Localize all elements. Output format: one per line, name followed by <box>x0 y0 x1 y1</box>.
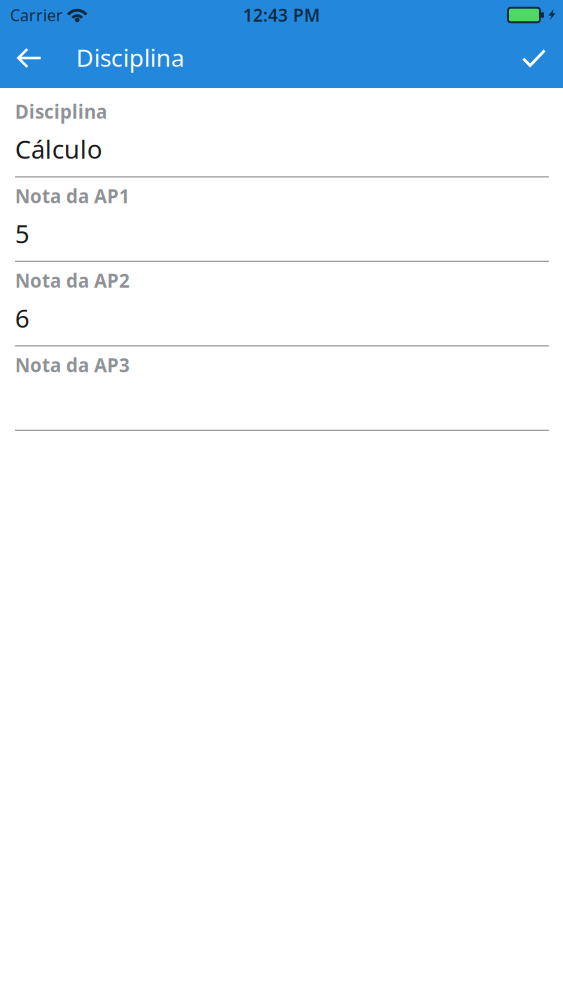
button[interactable]: Nota da AP1 <box>15 177 549 262</box>
button[interactable]: Nota da AP2 <box>15 262 549 346</box>
button[interactable]: Back <box>0 30 59 90</box>
button[interactable]: Save <box>505 30 563 90</box>
staticText: Nota da AP2 <box>15 268 130 293</box>
staticText: Cálculo <box>15 132 102 166</box>
staticText: Carrier <box>10 4 63 26</box>
staticText: 6 <box>15 301 29 335</box>
staticText: Nota da AP3 <box>15 353 130 377</box>
button[interactable]: Disciplina <box>15 88 549 177</box>
staticText: Nota da AP1 <box>15 184 130 208</box>
staticText: Disciplina <box>76 42 184 73</box>
button[interactable]: Nota da AP3 <box>15 346 549 431</box>
staticText: 12:43 PM <box>243 3 320 26</box>
staticText: 5 <box>15 217 29 250</box>
staticText: Disciplina <box>15 99 107 124</box>
